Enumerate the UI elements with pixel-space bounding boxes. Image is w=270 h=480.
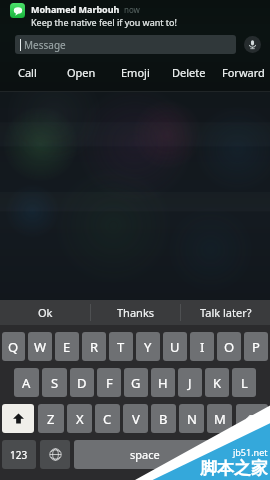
staticText: X: [76, 410, 84, 428]
staticText: Mohamed Marbouh: [31, 3, 120, 15]
staticText: J: [188, 374, 192, 392]
button[interactable]: Forward: [216, 60, 270, 84]
button[interactable]: Y: [136, 332, 160, 361]
button[interactable]: Thanks: [91, 300, 180, 325]
button[interactable]: V: [123, 404, 148, 433]
button[interactable]: send: [220, 440, 268, 469]
staticText: A: [22, 374, 31, 392]
staticText: T: [117, 338, 125, 356]
staticText: P: [252, 338, 260, 356]
staticText: Ok: [38, 305, 53, 320]
button[interactable]: C: [95, 404, 120, 433]
button[interactable]: A: [14, 368, 39, 397]
staticText: send: [231, 447, 257, 462]
staticText: space: [130, 447, 160, 462]
button[interactable]: Q: [2, 332, 25, 361]
staticText: 脚本之家: [200, 458, 268, 479]
staticText: now: [124, 4, 140, 15]
button[interactable]: R: [82, 332, 106, 361]
button[interactable]: space: [74, 440, 216, 469]
staticText: Emoji: [121, 65, 150, 80]
button[interactable]: Open: [54, 60, 108, 84]
staticText: M: [214, 410, 226, 428]
staticText: W: [34, 338, 47, 356]
button[interactable]: G: [124, 368, 148, 397]
staticText: jb51.net: [233, 446, 268, 458]
staticText: Thanks: [117, 305, 155, 320]
staticText: Z: [47, 410, 55, 428]
staticText: E: [63, 338, 71, 356]
staticText: 123: [10, 448, 28, 462]
staticText: K: [213, 374, 222, 392]
button[interactable]: Change keyboard: [40, 440, 70, 469]
staticText: N: [187, 410, 197, 428]
staticText: V: [132, 410, 140, 428]
button[interactable]: K: [205, 368, 229, 397]
staticText: G: [131, 374, 141, 392]
button[interactable]: U: [163, 332, 187, 361]
button[interactable]: Talk later?: [181, 300, 270, 325]
staticText: Forward: [222, 65, 265, 80]
button[interactable]: L: [232, 368, 256, 397]
button[interactable]: W: [28, 332, 52, 361]
staticText: R: [90, 338, 99, 356]
staticText: C: [103, 410, 112, 428]
button[interactable]: Z: [38, 404, 64, 433]
button[interactable]: Delete: [162, 60, 216, 84]
staticText: I: [200, 338, 205, 356]
button[interactable]: J: [178, 368, 202, 397]
staticText: Q: [8, 338, 19, 356]
staticText: U: [170, 338, 180, 356]
button[interactable]: O: [217, 332, 241, 361]
staticText: Talk later?: [200, 305, 252, 320]
staticText: F: [106, 374, 113, 392]
button[interactable]: Ok: [0, 300, 90, 325]
staticText: S: [51, 374, 59, 392]
button[interactable]: E: [55, 332, 79, 361]
staticText: Y: [144, 338, 152, 356]
staticText: Message: [24, 38, 66, 52]
button[interactable]: Dictate: [244, 36, 261, 53]
button[interactable]: Call: [0, 60, 54, 84]
staticText: O: [224, 338, 235, 356]
button[interactable]: P: [244, 332, 268, 361]
staticText: D: [77, 374, 87, 392]
button[interactable]: T: [109, 332, 133, 361]
staticText: L: [241, 374, 248, 392]
button[interactable]: F: [97, 368, 121, 397]
staticText: Call: [18, 65, 37, 80]
button[interactable]: M: [207, 404, 232, 433]
button[interactable]: Shift: [2, 404, 34, 433]
staticText: B: [159, 410, 168, 428]
button[interactable]: D: [70, 368, 94, 397]
button[interactable]: S: [42, 368, 67, 397]
button[interactable]: 123: [2, 440, 36, 469]
button[interactable]: N: [179, 404, 204, 433]
staticText: Delete: [172, 65, 206, 80]
button[interactable]: I: [190, 332, 214, 361]
button[interactable]: Messages: [10, 3, 25, 18]
staticText: Keep the native feel if you want to!: [31, 16, 177, 28]
button[interactable]: X: [67, 404, 92, 433]
staticText: H: [158, 374, 168, 392]
button[interactable]: B: [151, 404, 176, 433]
button[interactable]: Emoji: [108, 60, 162, 84]
button[interactable]: Message: [15, 35, 236, 54]
button[interactable]: H: [151, 368, 175, 397]
staticText: Open: [67, 65, 96, 80]
button[interactable]: Backspace: [236, 404, 268, 433]
